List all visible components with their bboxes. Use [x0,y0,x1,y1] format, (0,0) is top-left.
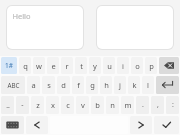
staticText: j [119,80,121,90]
button[interactable]: z [31,96,44,114]
staticText: r [65,61,69,71]
button[interactable]: t [75,57,87,74]
button[interactable]: n [106,96,119,114]
staticText: s [47,80,51,90]
button[interactable]: - [16,96,29,114]
button[interactable]: l [142,76,154,94]
button[interactable]: e [47,57,59,74]
button[interactable]: k [128,76,140,94]
staticText: - [21,100,24,110]
button[interactable]: s [42,76,55,94]
button[interactable]: h [100,76,112,94]
staticText: : [172,100,174,110]
button[interactable]: c [61,96,74,114]
staticText: o [135,61,140,71]
button[interactable]: w [33,57,45,74]
staticText: c [66,100,70,110]
staticText: f [77,80,80,90]
staticText: t [80,61,83,71]
staticText: . [142,100,144,110]
button[interactable]: Previous field [26,116,48,134]
staticText: i [122,61,124,71]
button[interactable]: a [27,76,40,94]
staticText: w [36,61,42,71]
button[interactable]: p [145,57,157,74]
staticText: a [31,80,36,90]
staticText: u [107,61,112,71]
button[interactable]: v [76,96,89,114]
button[interactable]: f [72,76,84,94]
button[interactable]: m [121,96,134,114]
button[interactable]: ABC [1,76,25,94]
button[interactable]: q [19,57,31,74]
button[interactable]: Backspace [159,57,179,74]
staticText: y [93,61,97,71]
staticText: g [90,80,95,90]
staticText: b [95,100,100,110]
button[interactable]: . [136,96,149,114]
staticText: m [124,100,132,110]
staticText: v [81,100,85,110]
staticText: d [61,80,66,90]
staticText: h [104,80,109,90]
staticText: l [147,80,149,90]
button[interactable]: Switch keyboard [1,116,24,134]
staticText: n [110,100,115,110]
button[interactable]: : [166,96,179,114]
button[interactable]: Enter [156,76,179,94]
button[interactable]: , [151,96,164,114]
staticText: q [23,61,28,71]
button[interactable]: 1# [1,57,17,74]
staticText: , [157,100,159,110]
staticText: z [36,100,40,110]
staticText: Hello [12,11,31,21]
staticText: p [149,61,154,71]
button[interactable]: x [46,96,59,114]
button[interactable]: j [114,76,126,94]
button[interactable]: Hello [7,6,83,49]
button[interactable]: i [117,57,129,74]
staticText: ABC [7,81,20,90]
staticText: e [51,61,56,71]
button[interactable]: d [57,76,70,94]
staticText: 1# [5,61,13,70]
staticText: _ [6,100,10,110]
button[interactable]: b [91,96,104,114]
button[interactable]: o [131,57,143,74]
button[interactable]: Next field [130,116,152,134]
button[interactable]: g [86,76,98,94]
button[interactable]: y [89,57,101,74]
button[interactable]: r [61,57,73,74]
button[interactable]: u [103,57,115,74]
staticText: k [132,80,137,90]
button[interactable]: _ [1,96,14,114]
staticText: x [51,100,55,110]
button[interactable]: Done [154,116,179,134]
